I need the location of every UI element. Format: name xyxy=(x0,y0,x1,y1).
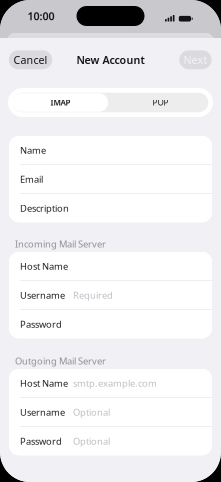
staticText: Incoming Mail Server xyxy=(15,238,106,250)
button[interactable]: Password xyxy=(9,310,212,338)
staticText: POP xyxy=(153,97,169,108)
staticText: Description xyxy=(20,202,69,214)
staticText: Name xyxy=(20,144,46,156)
staticText: Outgoing Mail Server xyxy=(15,355,106,367)
button[interactable]: Email xyxy=(9,165,212,193)
button[interactable]: Username xyxy=(9,398,212,426)
staticText: Optional xyxy=(73,406,110,418)
staticText: Username xyxy=(20,406,65,418)
staticText: Username xyxy=(20,289,65,301)
staticText: smtp.example.com xyxy=(73,377,157,389)
staticText: Host Name xyxy=(20,260,68,272)
staticText: Required xyxy=(73,289,113,301)
staticText: Next xyxy=(183,53,207,67)
staticText: Cancel xyxy=(13,53,47,67)
button[interactable]: Username xyxy=(9,281,212,309)
button[interactable]: Host Name xyxy=(9,369,212,397)
button[interactable]: Next xyxy=(179,50,212,69)
button[interactable]: IMAP xyxy=(13,93,108,112)
staticText: Password xyxy=(20,435,62,447)
staticText: Password xyxy=(20,318,62,330)
staticText: Email xyxy=(20,173,43,185)
staticText: IMAP xyxy=(50,97,70,108)
button[interactable]: Host Name xyxy=(9,252,212,280)
button[interactable]: Name xyxy=(9,136,212,164)
button[interactable]: Password xyxy=(9,427,212,455)
staticText: New Account xyxy=(76,53,144,67)
button[interactable]: POP xyxy=(113,93,208,112)
staticText: 10:00 xyxy=(27,9,54,23)
staticText: Host Name xyxy=(20,377,68,389)
button[interactable]: Cancel xyxy=(9,50,52,69)
staticText: Optional xyxy=(73,435,110,447)
button[interactable]: Description xyxy=(9,194,212,222)
